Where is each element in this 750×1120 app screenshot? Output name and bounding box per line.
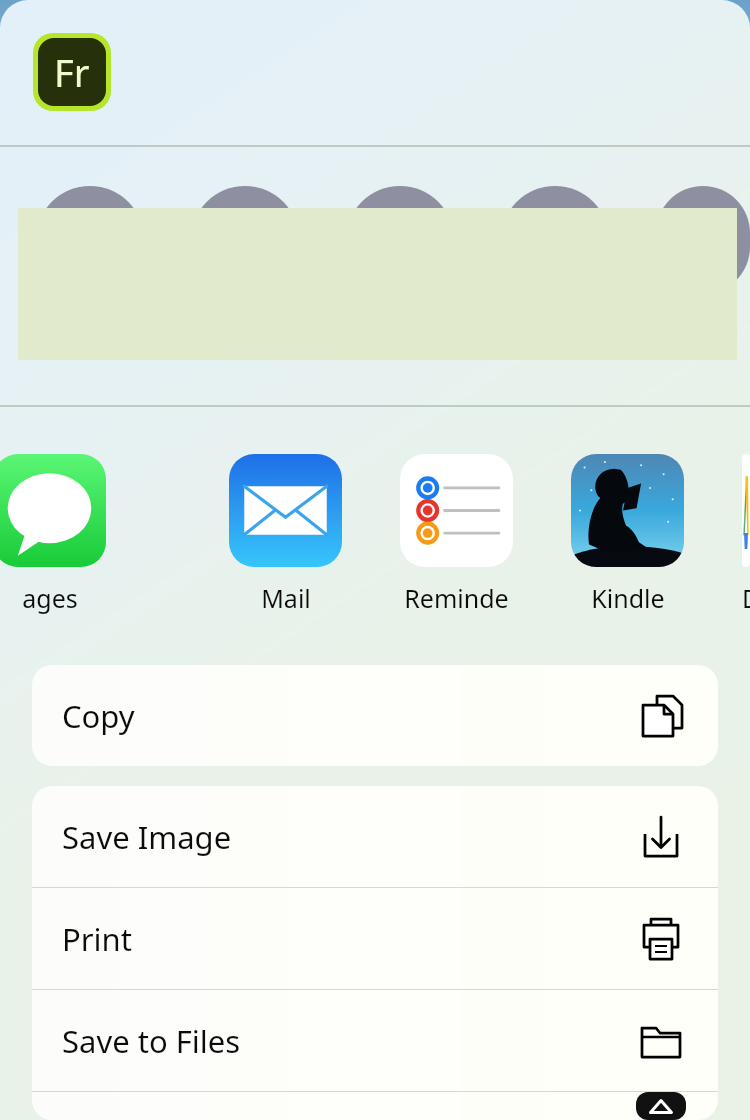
button[interactable]: Adobe Fresco document — [33, 33, 111, 111]
button[interactable]: Save to Files — [32, 990, 718, 1091]
other: Copy — [636, 691, 686, 741]
button[interactable]: Save Image — [32, 786, 718, 887]
button[interactable] — [32, 1092, 718, 1120]
button[interactable]: Drive — [742, 454, 750, 615]
button[interactable]: Herman — [501, 186, 609, 340]
button[interactable]: ages — [0, 454, 106, 615]
staticText: ages — [22, 581, 78, 615]
staticText: Fr — [54, 46, 90, 98]
staticText: Reminders — [400, 581, 513, 615]
button[interactable]: Mail — [229, 454, 342, 615]
staticText: Save Image — [62, 816, 232, 858]
button[interactable]: Print — [32, 888, 718, 989]
staticText: Drive — [742, 581, 750, 615]
staticText: Kindle — [591, 581, 665, 615]
other: Save to Files — [636, 1016, 686, 1066]
button[interactable]: Herman — [36, 186, 144, 340]
button[interactable]: and 1 other — [191, 186, 299, 340]
other: Print — [636, 914, 686, 964]
staticText: Save to Files — [62, 1020, 241, 1062]
button[interactable]: Orell — [346, 186, 454, 340]
button[interactable]: Kindle — [571, 454, 684, 615]
staticText: Copy — [62, 695, 135, 737]
staticText: Print — [62, 918, 132, 960]
button[interactable]: Reminders — [400, 454, 513, 615]
button[interactable]: Copy — [32, 665, 718, 766]
other: Save Image — [636, 812, 686, 862]
button[interactable]: M — [656, 186, 750, 340]
staticText: Mail — [261, 581, 311, 615]
